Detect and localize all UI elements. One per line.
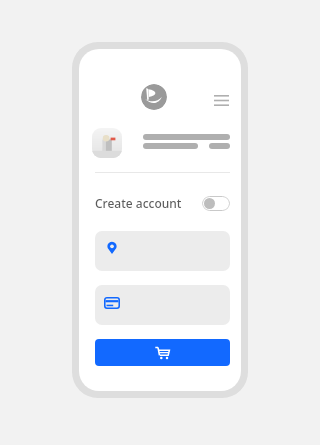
button[interactable]: Profile photo xyxy=(92,128,122,158)
button[interactable]: Menu xyxy=(209,89,233,111)
button[interactable]: Place order xyxy=(95,339,230,366)
button[interactable]: Create account xyxy=(95,192,230,214)
staticText: Create account xyxy=(95,195,182,211)
button[interactable]: App logo xyxy=(141,84,167,110)
button[interactable]: Choose payment method xyxy=(95,285,230,325)
button[interactable]: Choose delivery address xyxy=(95,231,230,271)
